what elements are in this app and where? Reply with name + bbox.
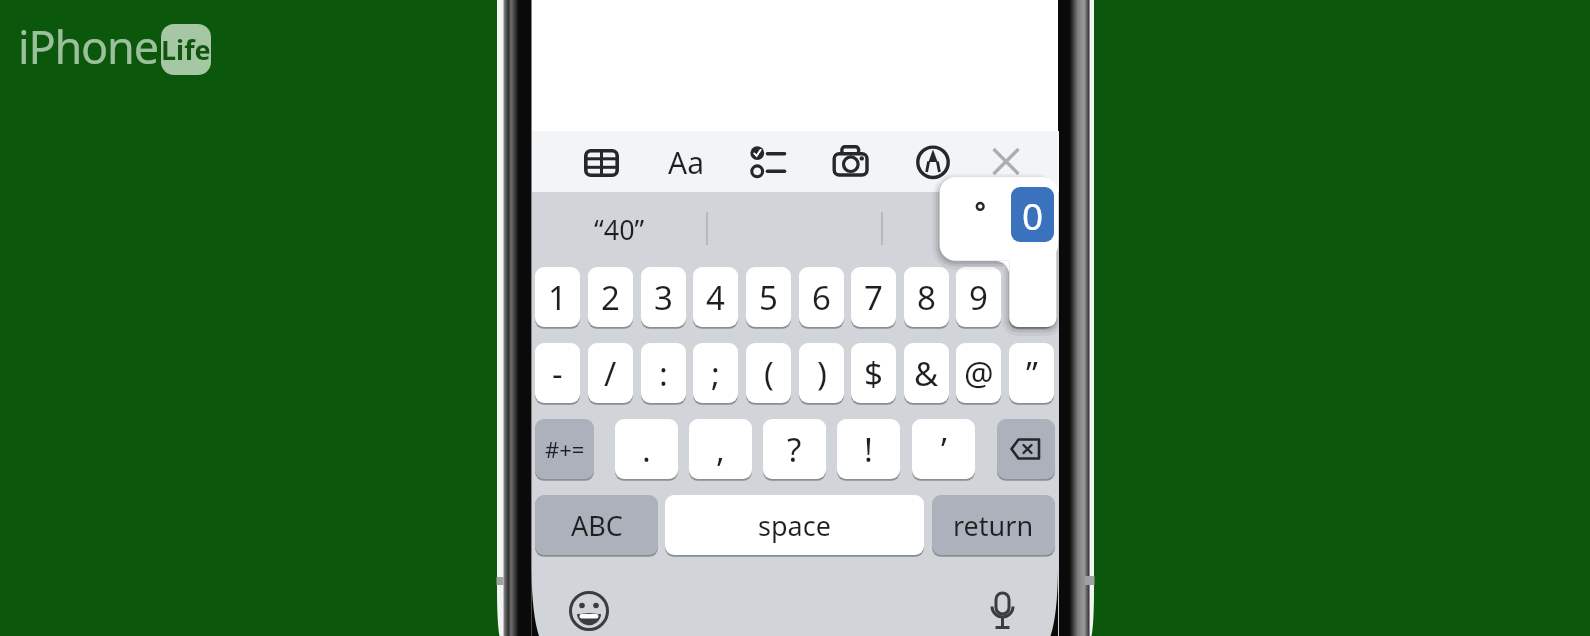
staticText: , (716, 427, 725, 472)
staticText: . (642, 427, 651, 472)
staticText: #+= (545, 434, 585, 464)
staticText: ( (764, 351, 774, 396)
staticText: 4 (706, 275, 725, 320)
staticText: 6 (812, 275, 831, 320)
button[interactable] (982, 588, 1022, 632)
button[interactable] (1009, 267, 1054, 327)
button[interactable]: 9 (956, 267, 1001, 327)
staticText: ! (864, 427, 873, 472)
staticText: / (604, 351, 617, 396)
button[interactable]: “40” (532, 192, 706, 267)
staticText: Aa (668, 142, 704, 183)
staticText: 8 (917, 275, 936, 320)
button[interactable]: 4 (693, 267, 738, 327)
button[interactable] (578, 141, 625, 185)
button[interactable]: ( (746, 343, 791, 403)
staticText: & (914, 351, 939, 396)
button[interactable]: $ (851, 343, 896, 403)
staticText: “40” (594, 211, 645, 248)
button[interactable]: - (535, 343, 580, 403)
button[interactable] (742, 137, 794, 188)
button[interactable]: 5 (746, 267, 791, 327)
staticText: iPhone (18, 16, 158, 77)
button[interactable]: iPhone (18, 16, 211, 77)
button[interactable]: Aa (663, 140, 708, 184)
button[interactable]: #+= (535, 419, 594, 479)
button[interactable]: ! (837, 419, 900, 479)
button[interactable]: / (588, 343, 633, 403)
staticText: ; (711, 351, 720, 396)
button[interactable]: ? (763, 419, 826, 479)
staticText: ” (1026, 351, 1038, 396)
staticText: 3 (654, 275, 673, 320)
staticText: @ (964, 351, 994, 396)
staticText: 7 (864, 275, 883, 320)
staticText: ABC (571, 507, 623, 544)
button[interactable]: 6 (799, 267, 844, 327)
staticText: 1 (548, 275, 567, 320)
staticText: Life (161, 31, 211, 68)
button[interactable]: : (641, 343, 686, 403)
button[interactable] (911, 138, 955, 186)
button[interactable]: 0 (1011, 187, 1054, 242)
staticText: : (659, 351, 668, 396)
button[interactable]: return (932, 495, 1055, 555)
button[interactable]: & (904, 343, 949, 403)
button[interactable] (997, 419, 1055, 479)
button[interactable]: ; (693, 343, 738, 403)
button[interactable]: ’ (912, 419, 975, 479)
button[interactable] (985, 138, 1027, 184)
staticText: $ (864, 351, 883, 396)
button[interactable]: space (665, 495, 924, 555)
button[interactable] (882, 192, 1058, 267)
staticText: 0 (1022, 190, 1044, 240)
staticText: - (552, 351, 563, 396)
button[interactable] (824, 136, 877, 187)
button[interactable]: 7 (851, 267, 896, 327)
button[interactable]: 1 (535, 267, 580, 327)
button[interactable]: 2 (588, 267, 633, 327)
button[interactable]: 3 (641, 267, 686, 327)
button[interactable] (567, 589, 611, 633)
staticText: ) (817, 351, 827, 396)
staticText: ? (787, 427, 802, 472)
staticText: 5 (759, 275, 778, 320)
staticText: 2 (601, 275, 620, 320)
button[interactable]: ) (799, 343, 844, 403)
staticText: 9 (969, 275, 988, 320)
button[interactable]: ABC (535, 495, 658, 555)
staticText: return (953, 507, 1034, 544)
button[interactable]: ” (1009, 343, 1054, 403)
button[interactable]: @ (956, 343, 1001, 403)
button[interactable]: . (615, 419, 678, 479)
staticText: space (758, 507, 831, 544)
button[interactable]: 8 (904, 267, 949, 327)
button[interactable]: , (689, 419, 752, 479)
staticText: ’ (941, 427, 947, 472)
